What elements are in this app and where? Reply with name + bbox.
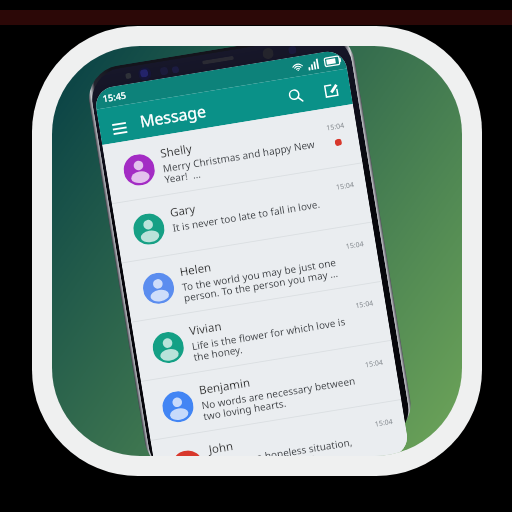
staticText: 15:04 [374,417,393,430]
staticText: 15:04 [335,180,355,193]
button[interactable]: Helen [122,222,382,323]
button[interactable]: Gary [112,163,372,263]
staticText: Benjamin [198,374,252,398]
staticText: Gary [169,201,197,221]
button[interactable]: Search [280,80,312,112]
staticText: 15:04 [326,121,345,134]
staticText: 15:04 [355,298,374,311]
button[interactable]: Menu [104,112,136,144]
staticText: There is no hopeless situation, only des… [210,432,369,456]
staticText: 15:04 [345,239,364,252]
staticText: Merry Christmas and happy New Year! … [162,136,321,186]
button[interactable]: John [151,400,410,456]
staticText: No words are necessary between two lovin… [200,373,359,423]
button[interactable]: Compose message [315,74,347,106]
staticText: Shelly [159,141,193,162]
button[interactable]: Shelly [102,104,363,204]
button[interactable]: Vivian [131,282,392,382]
staticText: Life is the flower for which love is the… [191,314,350,364]
staticText: 15:04 [364,358,384,370]
staticText: 15:45 [102,88,127,105]
staticText: To the world you may be just one person.… [181,255,340,305]
staticText: Message [138,100,208,132]
staticText: Vivian [188,318,223,339]
staticText: Helen [178,259,213,280]
staticText: John [207,438,235,456]
button[interactable]: Benjamin [141,341,401,441]
staticText: It is never too late to fall in love. [171,197,322,235]
